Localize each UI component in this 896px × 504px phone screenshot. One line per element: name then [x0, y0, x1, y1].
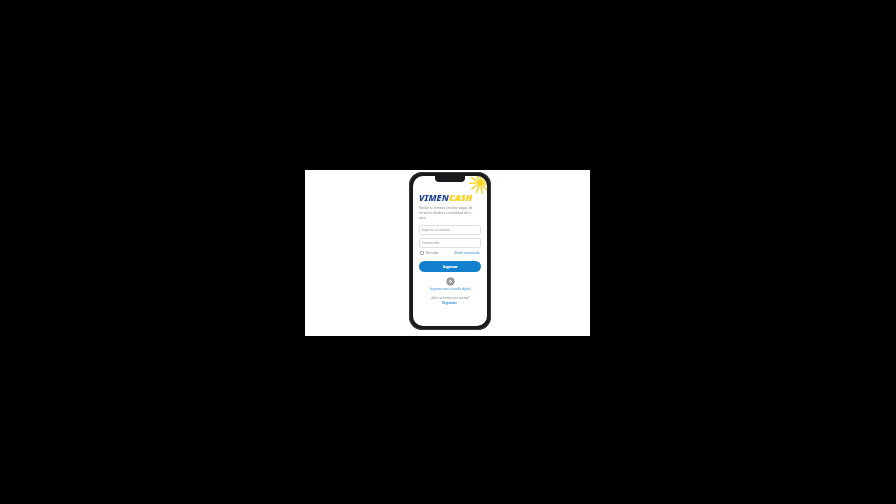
staticText: servicios desde la comodidad de tu [419, 211, 472, 215]
staticText: CASH [449, 191, 473, 203]
staticText: VIMEN [419, 191, 449, 203]
staticText: Ingresar [443, 264, 458, 269]
staticText: Olvidé contraseña [454, 251, 480, 255]
button[interactable]: Recordar [419, 250, 440, 256]
button[interactable]: Ingresar con huella digital [446, 277, 454, 285]
button[interactable]: Regístrate [442, 301, 458, 305]
staticText: casa. [419, 216, 427, 220]
button[interactable]: Contraseña [419, 238, 481, 248]
button[interactable]: Ingresar con tu huella digital [430, 287, 471, 291]
staticText: Regístrate [442, 301, 458, 305]
button[interactable]: Olvidé contraseña [453, 250, 481, 256]
staticText: Ingresar con tu huella digital [430, 287, 471, 291]
staticText: Contraseña [422, 241, 440, 245]
button[interactable]: Ingresar [419, 261, 481, 272]
staticText: Ingrese su usuario [422, 228, 450, 232]
staticText: ¿Aún no tienes una cuenta? [431, 296, 470, 300]
button[interactable]: Ingrese su usuario [419, 225, 481, 235]
staticText: Recibe tu remesa y realiza pagos de [419, 206, 473, 210]
staticText: Recordar [426, 251, 439, 255]
